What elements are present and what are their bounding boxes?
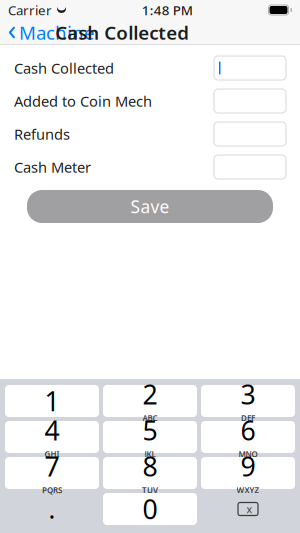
staticText: GHI xyxy=(44,449,59,459)
staticText: Machine xyxy=(19,20,95,45)
staticText: x xyxy=(246,502,252,516)
staticText: Save xyxy=(130,195,169,218)
staticText: DEF xyxy=(241,413,255,423)
staticText: Cash Collected xyxy=(55,20,189,45)
button[interactable]: 2 xyxy=(103,385,197,417)
button[interactable]: 3 xyxy=(201,385,295,417)
button[interactable]: 9 xyxy=(201,457,295,489)
button[interactable]: 0 xyxy=(103,493,197,525)
staticText: ABC xyxy=(142,413,157,423)
staticText: . xyxy=(48,492,55,526)
staticText: Carrier xyxy=(8,1,52,19)
staticText: 9 xyxy=(240,448,255,484)
staticText: Added to Coin Mech xyxy=(14,91,152,111)
button[interactable]: Machine xyxy=(0,16,95,49)
button[interactable]: . xyxy=(5,493,99,525)
staticText: JKL xyxy=(144,449,155,459)
staticText: MNO xyxy=(238,449,257,459)
staticText: 1 xyxy=(44,383,59,419)
button[interactable]: 5 xyxy=(103,421,197,453)
staticText: Cash Collected xyxy=(14,58,114,78)
button[interactable]: 6 xyxy=(201,421,295,453)
staticText: 3 xyxy=(240,376,255,412)
staticText: 4 xyxy=(44,412,59,448)
staticText: Refunds xyxy=(14,124,70,144)
staticText: 8 xyxy=(142,448,157,484)
staticText: WXYZ xyxy=(236,485,259,495)
button[interactable]: 7 xyxy=(5,457,99,489)
button[interactable]: 8 xyxy=(103,457,197,489)
staticText: 0 xyxy=(142,491,157,527)
staticText: 5 xyxy=(142,412,157,448)
staticText: 6 xyxy=(240,412,255,448)
staticText: 7 xyxy=(44,448,59,484)
staticText: 1:48 PM xyxy=(142,1,193,19)
button[interactable]: Delete xyxy=(201,493,295,525)
staticText: TUV xyxy=(142,485,158,495)
staticText: 2 xyxy=(142,376,157,412)
button[interactable]: 4 xyxy=(5,421,99,453)
button[interactable]: 1 xyxy=(5,385,99,417)
staticText: PQRS xyxy=(42,485,62,495)
button[interactable]: Save xyxy=(27,190,273,223)
staticText: Cash Meter xyxy=(14,157,91,177)
